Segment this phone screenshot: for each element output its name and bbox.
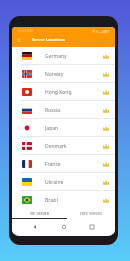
button[interactable]: Back: [30, 222, 40, 232]
staticText: Hong Kong: [45, 89, 72, 96]
staticText: Norway: [45, 71, 64, 78]
button[interactable]: Back: [12, 33, 26, 47]
staticText: Japan: [45, 125, 59, 132]
button[interactable]: FREE SERVER: [67, 209, 115, 218]
button[interactable]: Japan: [12, 119, 115, 137]
staticText: Germany: [45, 53, 67, 60]
staticText: VIP SERVER: [30, 211, 50, 216]
button[interactable]: Brazil: [12, 191, 115, 209]
button[interactable]: Recents: [87, 222, 97, 232]
button[interactable]: Home: [59, 222, 69, 232]
staticText: FREE SERVER: [80, 211, 102, 216]
staticText: Server Locations: [32, 37, 66, 43]
staticText: France: [45, 161, 61, 168]
staticText: Denmark: [45, 143, 67, 150]
button[interactable]: Hong Kong: [12, 83, 115, 101]
button[interactable]: Denmark: [12, 137, 115, 155]
button[interactable]: Russia: [12, 101, 115, 119]
button[interactable]: Germany: [12, 47, 115, 65]
staticText: Ukraine: [45, 179, 64, 186]
staticText: Russia: [45, 107, 61, 114]
button[interactable]: Ukraine: [12, 173, 115, 191]
button[interactable]: France: [12, 155, 115, 173]
button[interactable]: VIP SERVER: [12, 209, 67, 218]
staticText: ● ▲ ▂▄▆ ▮: [92, 28, 110, 33]
button[interactable]: Norway: [12, 65, 115, 83]
staticText: Brazil: [45, 197, 58, 204]
staticText: 10:42 AM: [17, 28, 33, 33]
